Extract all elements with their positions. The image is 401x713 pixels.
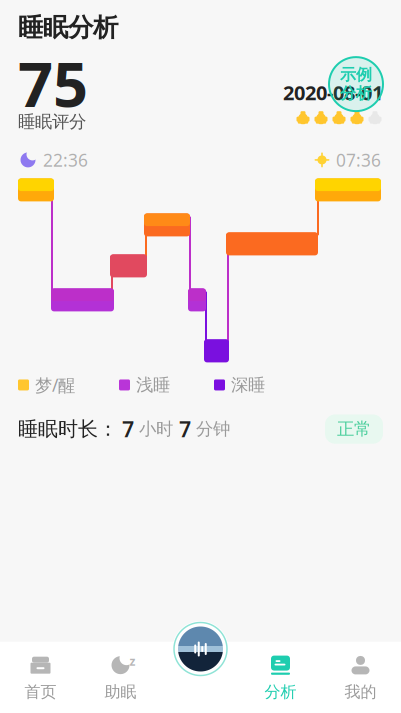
staticText: 助眠 [104, 682, 136, 702]
staticText: 梦/醒 [35, 373, 75, 396]
staticText: 睡眠评分 [18, 111, 86, 132]
staticText: 2020-08-01 [283, 79, 383, 106]
staticText: 7 [122, 415, 134, 443]
staticText: 22:36 [43, 148, 88, 171]
staticText: 睡眠分析 [18, 12, 118, 43]
staticText: 75 [18, 42, 88, 124]
staticText: 7 [179, 415, 191, 443]
button[interactable]: z [80, 653, 160, 703]
staticText: 小时 [139, 418, 173, 440]
staticText: 分析 [340, 84, 372, 103]
staticText: 07:36 [336, 148, 381, 171]
button[interactable]: 播放助眠音 [170, 619, 230, 679]
button[interactable]: 首页 [0, 653, 80, 703]
staticText: 我的 [344, 682, 376, 702]
staticText: 分析 [264, 682, 296, 702]
staticText: 首页 [24, 682, 56, 702]
staticText: 分钟 [196, 418, 230, 440]
staticText: 示例 [340, 65, 372, 85]
staticText: 浅睡 [136, 374, 170, 396]
staticText: 正常 [337, 418, 371, 440]
button[interactable]: 分析 [240, 653, 320, 703]
staticText: z [129, 653, 135, 669]
button[interactable]: 我的 [320, 653, 400, 703]
staticText: 深睡 [231, 374, 265, 396]
staticText: 睡眠时长： [18, 417, 118, 441]
